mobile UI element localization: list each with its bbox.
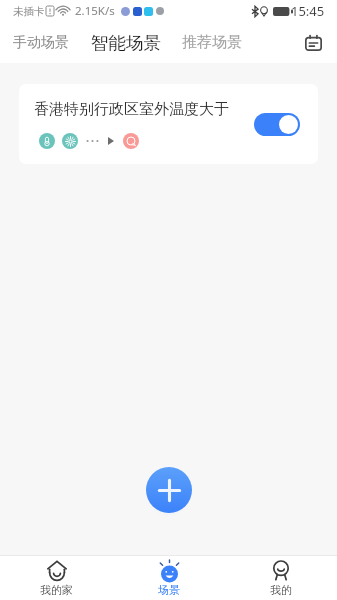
button[interactable]: 我的家 xyxy=(0,556,113,600)
button[interactable]: Toggle scene xyxy=(254,113,300,136)
button[interactable]: 香港特别行政区室外温度大于 xyxy=(19,84,318,164)
button[interactable]: 我的 xyxy=(225,556,337,600)
button[interactable]: Add scene xyxy=(146,467,192,513)
staticText: 2.15K/s xyxy=(75,3,115,19)
staticText: 未插卡 xyxy=(13,5,45,18)
button[interactable]: Scene log xyxy=(297,27,329,59)
staticText: 场景 xyxy=(158,583,180,597)
button[interactable]: 智能场景 xyxy=(80,26,172,60)
staticText: 手动场景 xyxy=(13,34,69,52)
staticText: 推荐场景 xyxy=(182,33,242,52)
staticText: 香港特别行政区室外温度大于 xyxy=(34,100,229,119)
staticText: 我的 xyxy=(270,583,292,597)
staticText: 我的家 xyxy=(40,583,73,597)
button[interactable]: 推荐场景 xyxy=(172,25,252,60)
button[interactable]: 手动场景 xyxy=(0,26,80,60)
staticText: 15:45 xyxy=(291,2,325,20)
button[interactable]: 场景 xyxy=(113,556,225,600)
staticText: 智能场景 xyxy=(91,32,161,54)
